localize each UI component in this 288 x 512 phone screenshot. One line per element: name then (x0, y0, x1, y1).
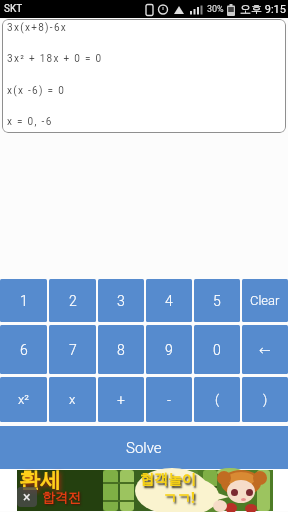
button[interactable]: 4 (146, 279, 192, 322)
staticText: + (117, 392, 125, 408)
button[interactable]: ← (242, 325, 288, 374)
staticText: 9 (165, 342, 173, 358)
staticText: 환세 (19, 467, 61, 493)
staticText: 4 (165, 293, 173, 309)
button[interactable]: x² (0, 377, 47, 422)
staticText: × (23, 489, 31, 505)
staticText: ( (215, 392, 220, 407)
button[interactable]: x (49, 377, 96, 422)
staticText: 협객놀이 (140, 471, 196, 489)
button[interactable]: - (146, 377, 192, 422)
button[interactable]: 5 (194, 279, 240, 322)
staticText: 오후 9:15 (240, 2, 286, 16)
staticText: - (167, 392, 172, 408)
button[interactable]: 1 (0, 279, 47, 322)
button[interactable]: + (98, 377, 144, 422)
staticText: 3x(x+8)-6x (7, 22, 68, 34)
staticText: Solve (126, 439, 162, 457)
staticText: ← (259, 342, 271, 358)
staticText: 합격전 (42, 489, 81, 505)
button[interactable]: × (17, 487, 37, 507)
staticText: SKT (4, 3, 23, 15)
staticText: 2 (69, 293, 77, 309)
staticText: 30% (207, 4, 224, 15)
button[interactable]: 8 (98, 325, 144, 374)
staticText: x = 0, -6 (7, 116, 53, 128)
staticText: x(x -6) = 0 (7, 85, 66, 97)
staticText: 6 (20, 342, 28, 358)
button[interactable]: 6 (0, 325, 47, 374)
button[interactable]: Clear (242, 279, 288, 322)
staticText: 1 (20, 293, 28, 309)
staticText: x (69, 392, 76, 407)
button[interactable]: 7 (49, 325, 96, 374)
staticText: 8 (117, 342, 125, 358)
button[interactable]: 3 (98, 279, 144, 322)
staticText: 3 (117, 293, 125, 309)
staticText: x² (18, 392, 30, 407)
staticText: 0 (213, 342, 221, 358)
staticText: ) (263, 392, 268, 407)
button[interactable]: ) (242, 377, 288, 422)
staticText: 5 (213, 293, 221, 309)
staticText: ㄱㄱ! (163, 490, 195, 508)
staticText: Clear (250, 293, 280, 308)
staticText: 3x² + 18x + 0 = 0 (7, 53, 103, 65)
button[interactable]: 0 (194, 325, 240, 374)
button[interactable]: 2 (49, 279, 96, 322)
button[interactable]: Solve (0, 426, 288, 469)
button[interactable]: ( (194, 377, 240, 422)
staticText: 7 (69, 342, 77, 358)
button[interactable]: 환세 (17, 470, 273, 511)
button[interactable]: 9 (146, 325, 192, 374)
